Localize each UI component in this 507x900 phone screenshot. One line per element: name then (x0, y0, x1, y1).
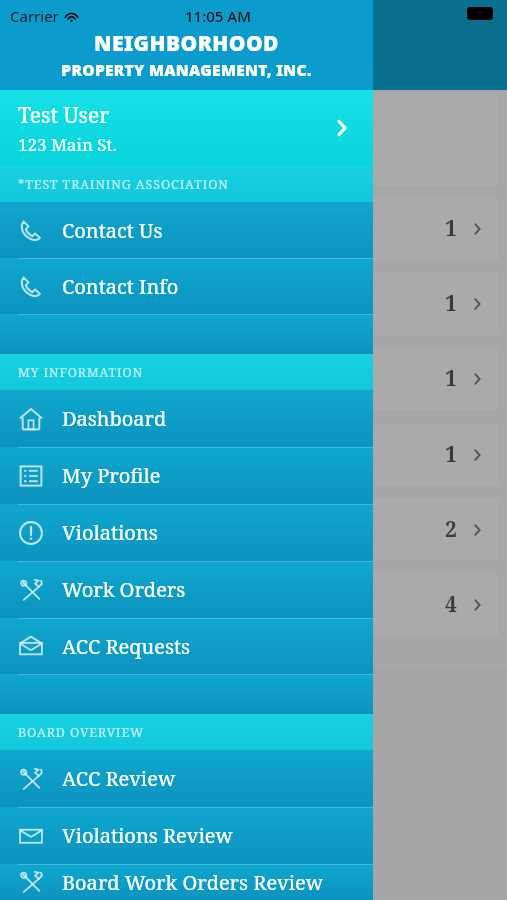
button[interactable]: Work Orders (0, 561, 373, 618)
staticText: Contact Us (62, 217, 163, 244)
staticText: Contact Info (62, 273, 179, 300)
staticText: Carrier (10, 6, 59, 26)
staticText: ACC Requests (62, 633, 191, 660)
button[interactable]: Contact Us (0, 202, 373, 258)
staticText: NEIGHBORHOOD (94, 29, 279, 58)
staticText: 1 (445, 289, 457, 318)
staticText: PROPERTY MANAGEMENT, INC. (61, 59, 312, 80)
staticText: Board Work Orders Review (62, 869, 323, 896)
staticText: Test User (18, 101, 110, 130)
staticText: BOARD OVERVIEW (18, 724, 144, 741)
staticText: Violations Review (62, 822, 233, 849)
staticText: 1 (445, 214, 457, 243)
staticText: MY INFORMATION (18, 364, 144, 381)
staticText: Violations (62, 519, 158, 546)
staticText: My Profile (62, 462, 161, 489)
staticText: *TEST TRAINING ASSOCIATION (18, 176, 229, 193)
staticText: 2 (445, 515, 457, 544)
staticText: Work Orders (62, 576, 186, 603)
staticText: 11:05 AM (185, 6, 251, 26)
staticText: 1 (445, 440, 457, 469)
button[interactable]: Violations (0, 504, 373, 561)
button[interactable]: Violations Review (0, 807, 373, 864)
button[interactable]: ACC Requests (0, 618, 373, 674)
button[interactable]: ACC Review (0, 750, 373, 807)
button[interactable]: Board Work Orders Review (0, 864, 373, 900)
button[interactable]: Dashboard (0, 390, 373, 447)
staticText: 4 (445, 590, 457, 619)
button[interactable]: My Profile (0, 447, 373, 504)
staticText: 1 (445, 364, 457, 393)
staticText: 123 Main St. (18, 133, 117, 156)
staticText: ACC Review (62, 765, 176, 792)
button[interactable]: Test User (0, 90, 373, 166)
staticText: Dashboard (62, 405, 167, 432)
button[interactable]: Contact Info (0, 258, 373, 314)
